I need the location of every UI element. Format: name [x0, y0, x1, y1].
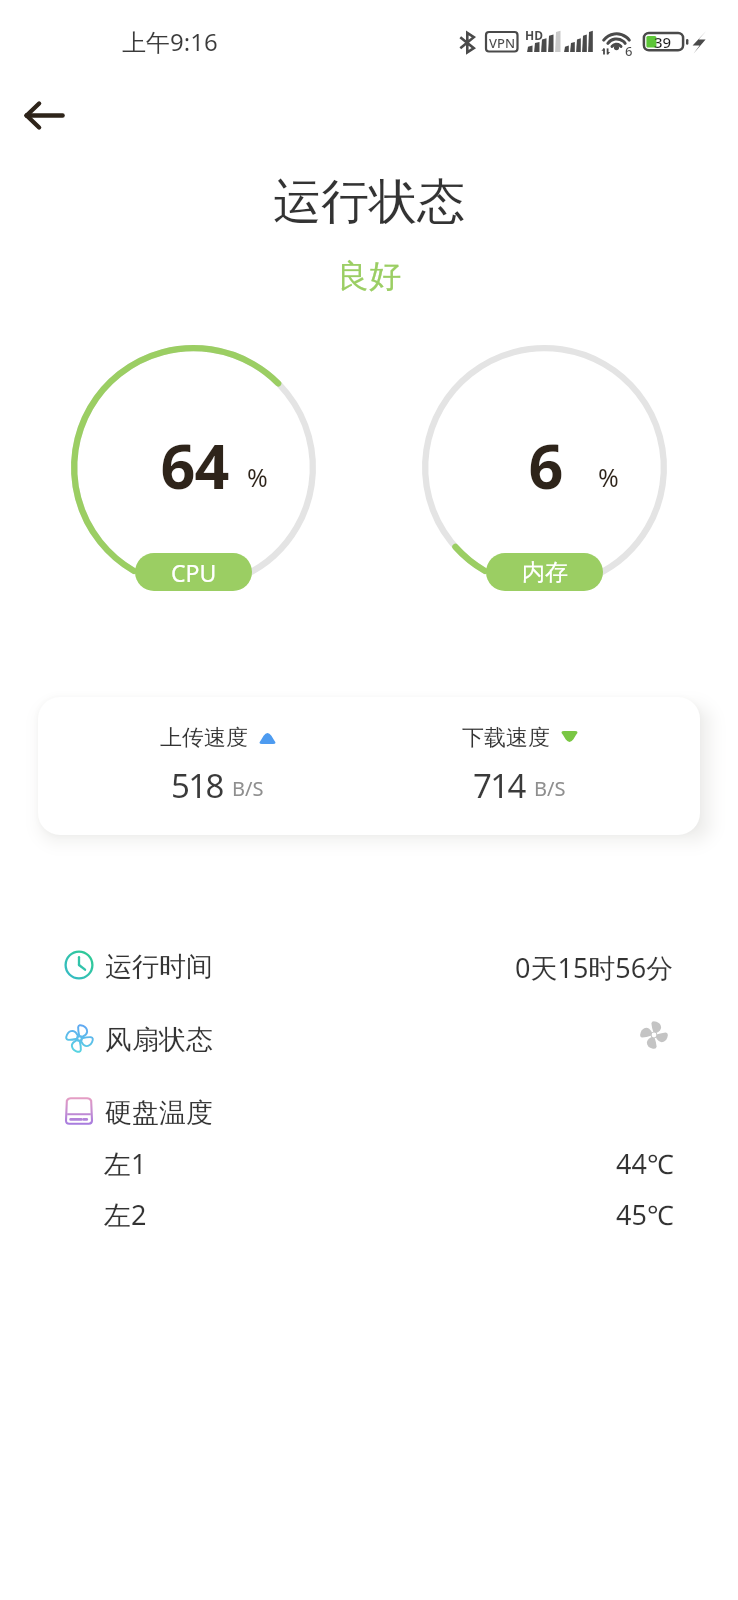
button[interactable]: Back — [8, 78, 82, 152]
staticText: 0天15时56分 — [515, 949, 674, 986]
staticText: 硬盘温度 — [105, 1096, 213, 1130]
button[interactable]: 风扇状态 — [64, 1014, 674, 1066]
staticText: 风扇状态 — [105, 1023, 213, 1057]
staticText: 45℃ — [616, 1196, 674, 1233]
staticText: 良好 — [0, 256, 738, 296]
staticText: 44℃ — [616, 1145, 674, 1182]
button[interactable]: 运行时间 — [64, 941, 674, 993]
staticText: 64 — [72, 424, 317, 507]
button[interactable]: 硬盘温度 — [64, 1087, 674, 1139]
staticText: % — [598, 460, 619, 494]
button[interactable]: 左1 — [104, 1139, 674, 1187]
button[interactable]: 内存 — [486, 553, 603, 591]
staticText: 39 — [654, 32, 672, 52]
button[interactable]: 左2 — [104, 1190, 674, 1238]
button[interactable]: CPU — [135, 553, 252, 591]
staticText: % — [247, 460, 268, 494]
staticText: 运行状态 — [0, 172, 738, 232]
staticText: 518 — [171, 763, 223, 808]
staticText: 左2 — [104, 1196, 147, 1233]
staticText: B/S — [534, 775, 566, 802]
staticText: 6 — [423, 424, 668, 507]
staticText: 上传速度 — [160, 724, 248, 752]
staticText: 内存 — [522, 558, 568, 587]
staticText: 上午9:16 — [122, 25, 218, 58]
staticText: 左1 — [104, 1145, 147, 1182]
staticText: 运行时间 — [105, 950, 213, 984]
staticText: VPN — [489, 34, 516, 52]
staticText: 714 — [473, 763, 525, 808]
staticText: 下载速度 — [462, 724, 550, 752]
staticText: CPU — [171, 557, 217, 588]
staticText: B/S — [232, 775, 264, 802]
staticText: HD — [525, 27, 543, 43]
staticText: 6 — [625, 42, 633, 60]
